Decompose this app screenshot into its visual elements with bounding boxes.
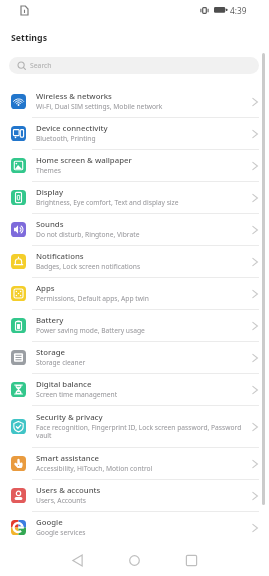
staticText: Badges, Lock screen notifications [36,262,141,271]
staticText: Accessibility, HiTouch, Motion control [36,464,153,473]
staticText: Permissions, Default apps, App twin [36,294,149,303]
button[interactable]: Users & accounts [0,480,269,512]
button[interactable]: Back [64,544,90,576]
staticText: Search [30,61,52,70]
staticText: Digital balance [36,379,92,390]
staticText: Sounds [36,219,64,230]
staticText: Smart assistance [36,453,100,464]
button[interactable]: Apps [0,278,269,310]
staticText: Users & accounts [36,485,101,496]
staticText: Wireless & networks [36,91,112,102]
button[interactable]: Home screen & wallpaper [0,150,269,182]
button[interactable]: Google [0,512,269,544]
button[interactable]: Notifications [0,246,269,278]
button[interactable]: Sounds [0,214,269,246]
button[interactable]: Smart assistance [0,448,269,480]
staticText: Screen time management [36,390,118,399]
staticText: Themes [36,166,61,175]
staticText: Storage cleaner [36,358,86,367]
button[interactable]: Device connectivity [0,118,269,150]
staticText: Battery [36,315,64,326]
staticText: Display [36,187,64,198]
staticText: Storage [36,347,65,358]
button[interactable]: Digital balance [0,374,269,406]
staticText: Home screen & wallpaper [36,155,132,166]
staticText: 4:39 [230,5,247,16]
button[interactable]: Battery [0,310,269,342]
staticText: Bluetooth, Printing [36,134,96,143]
staticText: Apps [36,283,55,294]
button[interactable]: Storage [0,342,269,374]
staticText: Do not disturb, Ringtone, Vibrate [36,230,140,239]
staticText: Users, Accounts [36,496,86,505]
staticText: Wi-Fi, Dual SIM settings, Mobile network [36,102,163,111]
button[interactable]: Display [0,182,269,214]
staticText: Notifications [36,251,84,262]
staticText: Security & privacy [36,412,103,423]
button[interactable]: Search [9,57,259,74]
button[interactable]: Home [121,544,147,576]
staticText: Settings [11,32,48,44]
button[interactable]: Recent apps [178,544,204,576]
staticText: Brightness, Eye comfort, Text and displa… [36,198,179,207]
button[interactable]: Security & privacy [0,406,269,448]
staticText: Google [36,517,63,528]
button[interactable]: Wireless & networks [0,86,269,118]
staticText: Google services [36,528,86,537]
staticText: Face recognition, Fingerprint ID, Lock s… [36,423,248,440]
staticText: Power saving mode, Battery usage [36,326,145,335]
staticText: Device connectivity [36,123,108,134]
